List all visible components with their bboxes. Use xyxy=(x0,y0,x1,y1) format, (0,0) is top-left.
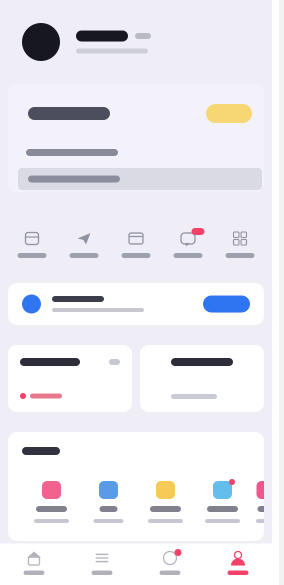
button[interactable]: More xyxy=(214,231,266,258)
button[interactable]: Cart xyxy=(136,549,204,575)
button[interactable]: Promotion xyxy=(0,283,272,325)
button[interactable]: Service 3 xyxy=(137,481,194,523)
button[interactable]: Profile xyxy=(0,0,272,84)
button[interactable]: Membership xyxy=(0,84,272,192)
button[interactable]: Service 2 xyxy=(80,481,137,523)
button[interactable]: Wallet xyxy=(110,231,162,258)
button[interactable]: Messages xyxy=(162,231,214,258)
button[interactable]: Home xyxy=(0,549,68,575)
button[interactable]: Shipping xyxy=(58,231,110,258)
button[interactable]: Service 5 xyxy=(251,481,281,523)
button[interactable]: Categories xyxy=(68,549,136,575)
button[interactable]: Points xyxy=(8,345,132,412)
button[interactable]: Wallet xyxy=(140,345,264,412)
button[interactable]: Service 4 xyxy=(194,481,251,523)
button[interactable]: Service 1 xyxy=(23,481,80,523)
button[interactable]: Orders xyxy=(6,231,58,258)
button[interactable]: Profile xyxy=(204,549,272,575)
